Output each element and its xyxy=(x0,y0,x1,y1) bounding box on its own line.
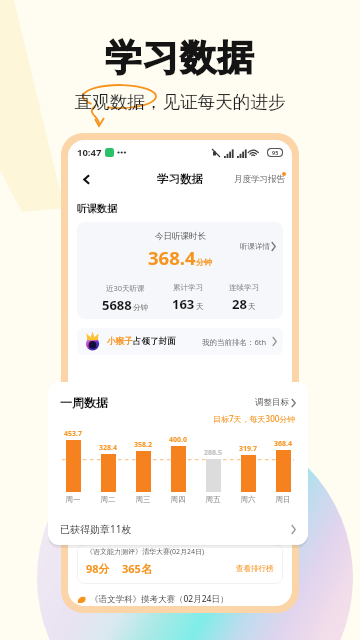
staticText: 28 xyxy=(232,295,247,313)
button[interactable]: 月度学习报告 xyxy=(234,174,285,185)
staticText: 周一 xyxy=(60,495,86,504)
button[interactable]: 听课详情 xyxy=(240,242,276,251)
staticText: 一周数据 xyxy=(60,395,108,410)
staticText: 目标7天，每天300分钟 xyxy=(213,413,296,424)
staticText: 累计学习 xyxy=(173,283,203,292)
staticText: 分钟 xyxy=(196,257,212,267)
staticText: 358.2 xyxy=(130,440,156,450)
staticText: 95 xyxy=(272,149,279,156)
staticText: 365名 xyxy=(122,561,152,576)
staticText: 368.4 xyxy=(148,245,196,270)
staticText: 163 xyxy=(172,295,195,313)
staticText: 直观数据，见证每天的进步 xyxy=(0,91,360,113)
staticText: 周二 xyxy=(95,495,121,504)
staticText: 周日 xyxy=(270,495,296,504)
staticText: 《语文学科》摸考大赛（02月24日） xyxy=(90,593,229,605)
staticText: 98分 xyxy=(86,561,110,576)
staticText: 听课数据 xyxy=(77,202,117,215)
button[interactable]: 调整目标 xyxy=(255,397,296,408)
staticText: 近30天听课 xyxy=(106,283,145,293)
staticText: 周三 xyxy=(130,495,156,504)
staticText: 5688 xyxy=(102,296,132,314)
staticText: 占领了封面 xyxy=(133,336,176,347)
staticText: 调整目标 xyxy=(255,397,289,408)
staticText: 10:47 xyxy=(77,146,102,159)
button[interactable]: 已获得勋章11枚 xyxy=(60,522,296,536)
staticText: 已获得勋章11枚 xyxy=(60,522,132,536)
staticText: 周六 xyxy=(235,495,261,504)
staticText: 400.0 xyxy=(165,435,191,445)
staticText: 368.4 xyxy=(270,439,296,449)
button[interactable]: 小猴子 xyxy=(83,328,277,355)
staticText: 天 xyxy=(196,302,204,311)
staticText: 小猴子 xyxy=(107,336,133,347)
staticText: 453.7 xyxy=(60,429,86,439)
staticText: 今日听课时长 xyxy=(155,231,206,242)
staticText: 天 xyxy=(248,302,256,311)
staticText: 周四 xyxy=(165,495,191,504)
staticText: 319.7 xyxy=(235,444,261,454)
staticText: 听课详情 xyxy=(240,242,270,251)
staticText: 周五 xyxy=(200,495,226,504)
button[interactable]: Back xyxy=(74,167,98,191)
staticText: 学习数据 xyxy=(157,172,203,186)
staticText: 查看排行榜 xyxy=(236,564,274,573)
staticText: 学习数据 xyxy=(0,35,360,80)
staticText: 我的当前排名：6th xyxy=(202,337,267,347)
staticText: 分钟 xyxy=(133,303,148,312)
staticText: 月度学习报告 xyxy=(234,174,285,185)
staticText: 328.4 xyxy=(95,443,121,453)
staticText: 《语文能力测评》清华大赛(02月24日) xyxy=(86,547,205,557)
staticText: 286.5 xyxy=(200,448,226,458)
staticText: 连续学习 xyxy=(229,283,259,292)
